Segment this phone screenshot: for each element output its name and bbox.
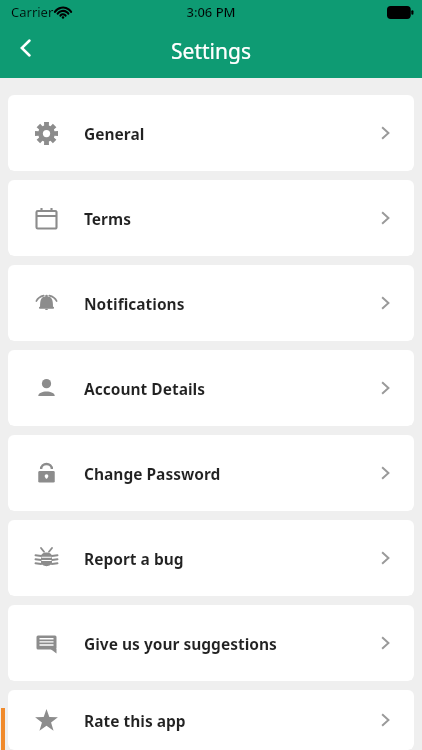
staticText: 3:06 PM [0,3,422,21]
staticText: Notifications [84,293,185,314]
button[interactable]: Change Password [8,435,414,511]
button[interactable]: Back [6,28,46,68]
staticText: Carrier [11,3,54,21]
button[interactable]: Account Details [8,350,414,426]
staticText: Account Details [84,378,205,399]
button[interactable]: Report a bug [8,520,414,596]
staticText: Rate this app [84,710,186,731]
staticText: Settings [0,37,422,66]
button[interactable]: Rate this app [8,690,414,750]
staticText: Terms [84,208,131,229]
staticText: Give us your suggestions [84,633,277,654]
button[interactable]: Terms [8,180,414,256]
staticText: General [84,123,145,144]
staticText: Change Password [84,463,221,484]
button[interactable]: Notifications [8,265,414,341]
staticText: Report a bug [84,548,184,569]
button[interactable]: Give us your suggestions [8,605,414,681]
button[interactable]: General [8,95,414,171]
